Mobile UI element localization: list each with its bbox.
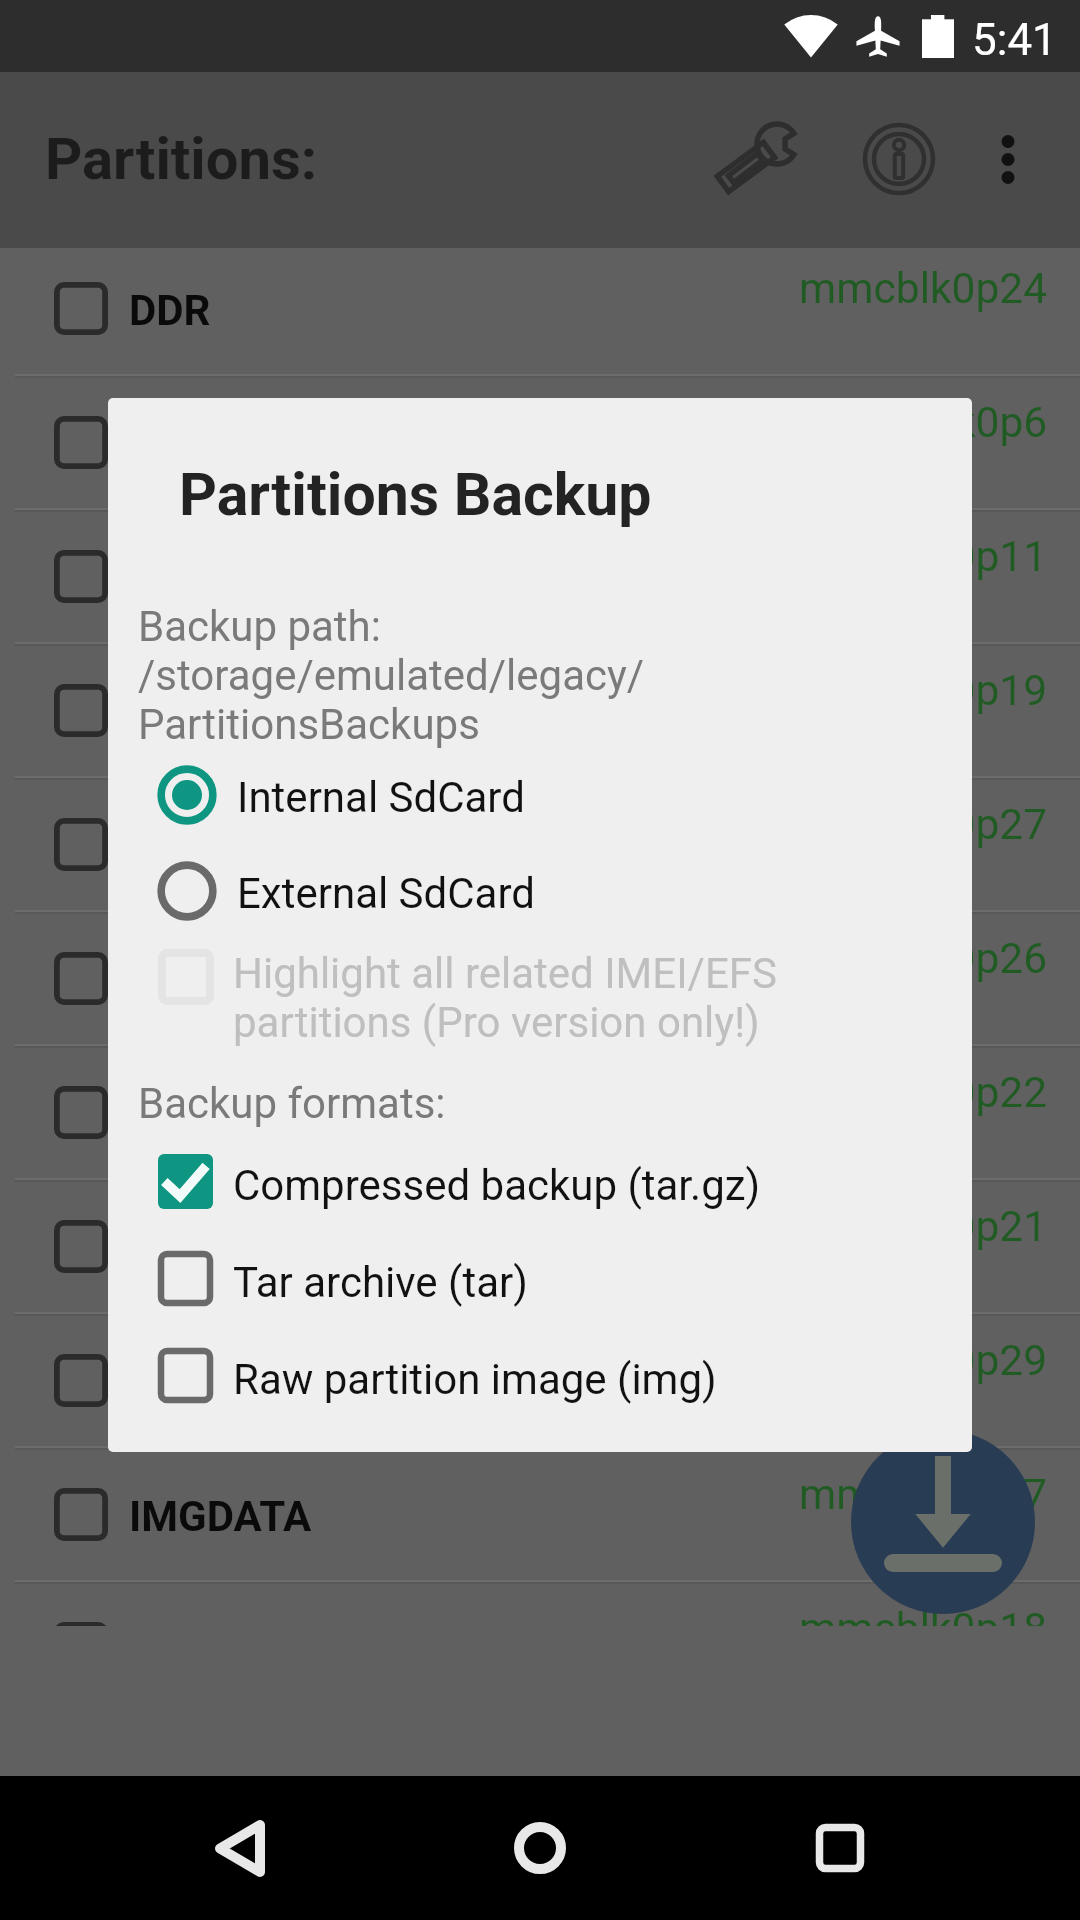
staticText: External SdCard (237, 869, 535, 918)
staticText: BOOT (129, 822, 239, 871)
button[interactable]: RECOVERY (0, 917, 1080, 1051)
button[interactable]: DDR (0, 247, 1080, 381)
button[interactable]: MODEM (0, 649, 1080, 783)
staticText: Internal SdCard (237, 773, 525, 822)
button[interactable]: Highlight all related IMEI/EFS partition… (108, 923, 972, 1027)
button[interactable]: PIT (0, 381, 1080, 515)
staticText: MODEM (129, 688, 283, 737)
staticText: mmcblk0p27 (799, 800, 1048, 850)
staticText: mmcblk0p11 (799, 532, 1048, 582)
staticText: mmcblk0p24 (799, 264, 1048, 314)
button[interactable]: USERDATA (0, 1319, 1080, 1453)
staticText: mmcblk0p29 (799, 1336, 1048, 1386)
staticText: Highlight all related IMEI/EFS partition… (233, 949, 777, 1047)
staticText: Partitions: (45, 125, 318, 193)
staticText: mmcblk0p6 (823, 398, 1048, 448)
staticText: mmcblk0p18 (799, 1604, 1048, 1626)
staticText: Backup path: /storage/emulated/legacy/ P… (138, 602, 645, 749)
staticText: mmcblk0p19 (799, 666, 1048, 716)
button[interactable]: Compressed backup (tar.gz) (108, 1133, 972, 1229)
button[interactable]: Raw partition image (img) (108, 1327, 972, 1423)
button[interactable]: CACHE (0, 1051, 1080, 1185)
staticText: Partitions Backup (179, 460, 652, 529)
staticText: mmcblk0p21 (799, 1202, 1048, 1252)
staticText: mmcblk0p26 (799, 934, 1048, 984)
staticText: Tar archive (tar) (233, 1258, 528, 1307)
button[interactable]: Info (843, 103, 955, 215)
button[interactable]: External SdCard (108, 845, 972, 941)
staticText: SYSTEM (129, 1224, 293, 1273)
staticText: mmcblk0p17 (799, 1470, 1048, 1520)
staticText: Backup formats: (138, 1079, 446, 1128)
button[interactable]: Backup (851, 1430, 1035, 1614)
staticText: mmcblk0p22 (799, 1068, 1048, 1118)
staticText: Compressed backup (tar.gz) (233, 1161, 761, 1210)
staticText: IMGDATA (129, 1492, 312, 1541)
button[interactable]: BOOT (0, 783, 1080, 917)
button[interactable]: Internal SdCard (108, 749, 972, 845)
button[interactable]: Recents (770, 1776, 910, 1920)
button[interactable]: PARAM (0, 1587, 1080, 1626)
button[interactable]: SYSTEM (0, 1185, 1080, 1319)
staticText: RECOVERY (129, 956, 339, 1005)
staticText: USERDATA (129, 1358, 338, 1407)
staticText: Raw partition image (img) (233, 1355, 717, 1404)
button[interactable]: EFS (0, 515, 1080, 649)
button[interactable]: Home (470, 1776, 610, 1920)
button[interactable]: Back (170, 1776, 310, 1920)
staticText: DDR (129, 286, 211, 335)
button[interactable]: Tar archive (tar) (108, 1230, 972, 1326)
button[interactable]: Tools (700, 106, 812, 218)
button[interactable]: IMGDATA (0, 1453, 1080, 1587)
staticText: CACHE (129, 1090, 266, 1139)
staticText: 5:41 (972, 14, 1057, 66)
button[interactable]: More options (952, 103, 1064, 215)
